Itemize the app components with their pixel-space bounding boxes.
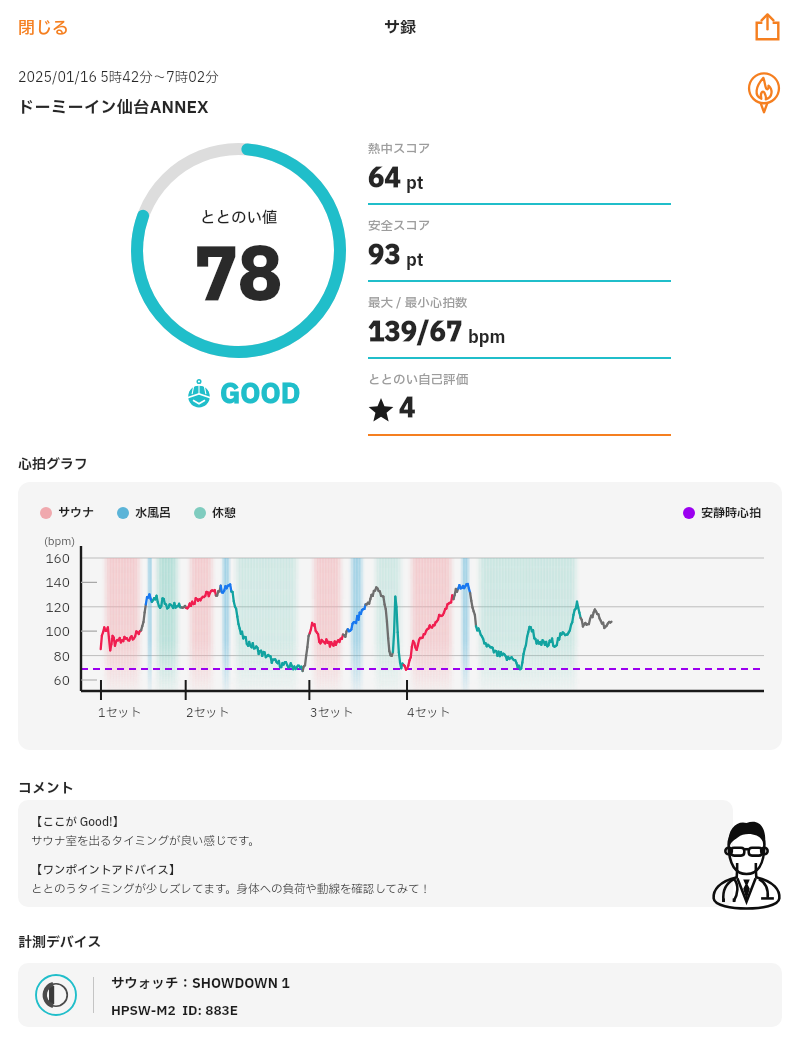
staticText: 160: [30, 549, 70, 568]
staticText: HPSW-M2 ID: 883E: [111, 1001, 238, 1020]
staticText: 93: [368, 236, 401, 275]
staticText: 139/67: [368, 313, 463, 352]
staticText: ととのい値: [200, 207, 278, 230]
staticText: 1セット: [98, 704, 142, 722]
staticText: ととのい自己評価: [368, 371, 469, 390]
button[interactable]: Sauna temperature: [741, 69, 787, 115]
staticText: 78: [194, 225, 283, 330]
staticText: サウォッチ：SHOWDOWN 1: [111, 974, 290, 994]
staticText: 80: [30, 647, 70, 666]
staticText: 安全スコア: [368, 217, 431, 236]
staticText: 安静時心拍: [701, 504, 762, 522]
staticText: pt: [406, 171, 424, 196]
staticText: GOOD: [220, 374, 301, 414]
staticText: コメント: [18, 778, 74, 799]
staticText: サ録: [384, 16, 417, 40]
staticText: 熱中スコア: [368, 140, 431, 159]
staticText: ドーミーイン仙台ANNEX: [18, 96, 209, 121]
staticText: (bpm): [44, 533, 76, 550]
staticText: 最大 / 最小心拍数: [368, 294, 468, 313]
staticText: pt: [406, 248, 424, 273]
staticText: 4: [399, 389, 416, 428]
staticText: 休憩: [212, 504, 237, 522]
staticText: 水風呂: [135, 504, 172, 522]
staticText: 計測デバイス: [18, 932, 102, 953]
staticText: 2025/01/16 5時42分〜7時02分: [18, 68, 219, 88]
staticText: 【ここが Good!】: [31, 814, 125, 831]
staticText: サウナ: [58, 504, 95, 522]
staticText: サウナ室を出るタイミングが良い感じです。: [31, 833, 260, 850]
staticText: 4セット: [407, 704, 451, 722]
staticText: 140: [30, 573, 70, 592]
staticText: 120: [30, 598, 70, 617]
button[interactable]: Share: [741, 5, 800, 52]
staticText: 心拍グラフ: [18, 454, 88, 475]
staticText: 閉じる: [18, 16, 69, 41]
staticText: 64: [368, 159, 401, 198]
staticText: bpm: [468, 325, 506, 350]
staticText: 100: [30, 622, 70, 641]
staticText: 60: [30, 671, 70, 690]
button[interactable]: 閉じる: [0, 4, 87, 53]
staticText: ととのうタイミングが少しズレてます。身体への負荷や動線を確認してみて！: [31, 881, 431, 898]
button[interactable]: サウォッチ：SHOWDOWN 1: [18, 963, 782, 1027]
staticText: 【ワンポイントアドバイス】: [31, 862, 181, 879]
staticText: 2セット: [186, 704, 230, 722]
staticText: 3セット: [310, 704, 354, 722]
